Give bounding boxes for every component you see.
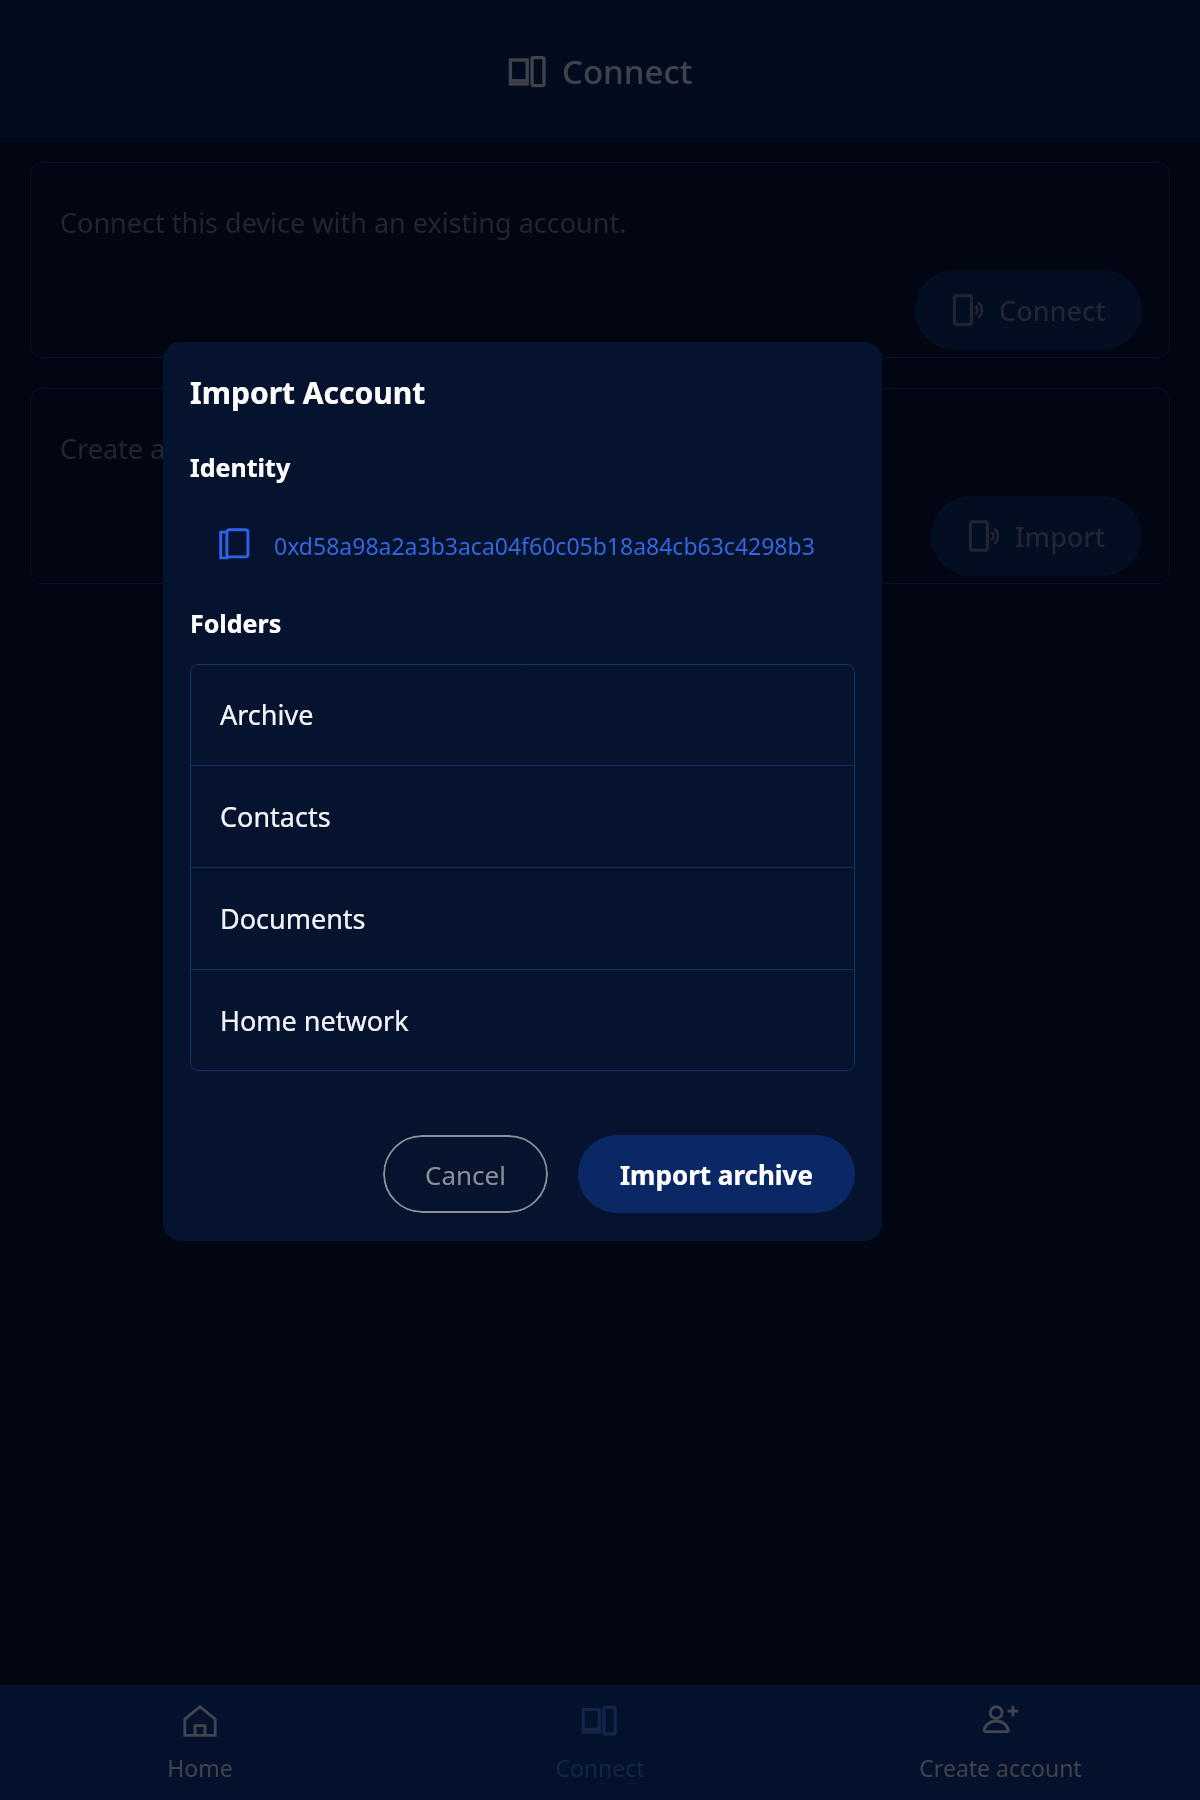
button[interactable]: Cancel — [383, 1135, 548, 1213]
staticText: Archive — [220, 696, 314, 733]
staticText: Import — [1015, 518, 1106, 555]
staticText: Connect — [999, 292, 1106, 329]
staticText: 0xd58a98a2a3b3aca04f60c05b18a84cb63c4298… — [274, 530, 815, 561]
button[interactable]: Documents — [190, 868, 855, 969]
staticText: Connect this device with an existing acc… — [60, 204, 627, 241]
button[interactable]: Create account — [800, 1685, 1200, 1800]
staticText: Contacts — [220, 798, 331, 835]
button[interactable]: Home — [0, 1685, 400, 1800]
staticText: Connect — [555, 1752, 645, 1783]
staticText: Import archive — [620, 1157, 813, 1192]
button[interactable]: Import archive — [578, 1135, 855, 1213]
staticText: Cancel — [425, 1157, 506, 1192]
staticText: Home network — [220, 1002, 409, 1039]
staticText: Connect — [562, 49, 693, 94]
other: Copy identity — [218, 528, 252, 562]
button[interactable]: Copy identity — [190, 522, 855, 568]
staticText: Folders — [190, 606, 282, 640]
staticText: Import Account — [190, 372, 426, 413]
button[interactable]: Home network — [190, 970, 855, 1071]
button[interactable]: Contacts — [190, 766, 855, 867]
staticText: Home — [167, 1752, 233, 1783]
button[interactable]: Connect — [915, 270, 1142, 350]
staticText: Create an account on this device. — [60, 430, 478, 467]
staticText: Create account — [919, 1752, 1082, 1783]
staticText: Identity — [190, 450, 291, 484]
button[interactable]: Import — [931, 496, 1142, 576]
button[interactable]: Connect — [400, 1685, 800, 1800]
staticText: Documents — [220, 900, 366, 937]
button[interactable]: Archive — [190, 664, 855, 765]
